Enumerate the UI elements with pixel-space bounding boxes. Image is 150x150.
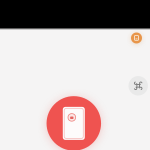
button[interactable]: Command xyxy=(128,76,148,95)
button[interactable]: Document xyxy=(131,32,142,43)
button[interactable]: Open card xyxy=(46,96,101,150)
